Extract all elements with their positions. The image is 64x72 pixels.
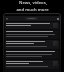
button[interactable]: [5, 50, 59, 59]
button[interactable]: Menu: [5, 17, 8, 20]
button[interactable]: [5, 30, 59, 39]
button[interactable]: [5, 40, 59, 49]
staticText: News, videos,: [19, 0, 47, 6]
staticText: and much more: [16, 7, 49, 13]
button[interactable]: [5, 22, 59, 29]
button[interactable]: [25, 17, 38, 20]
button[interactable]: [5, 60, 59, 69]
button[interactable]: Account: [56, 17, 59, 20]
